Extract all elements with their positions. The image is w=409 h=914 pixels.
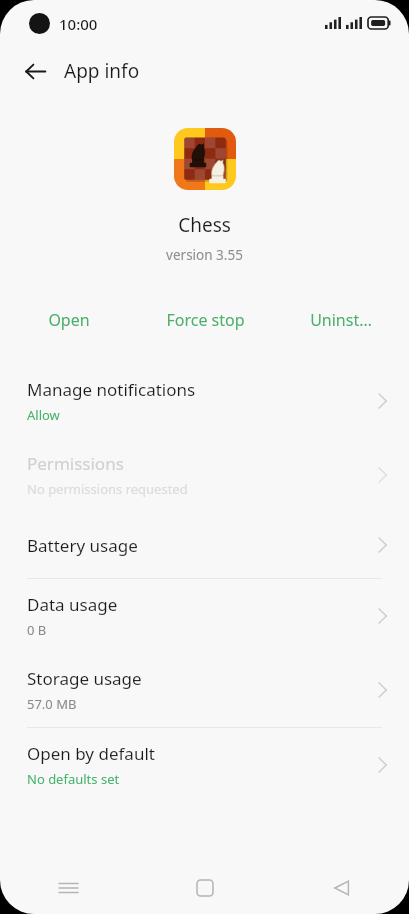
staticText: Permissions [27,452,124,475]
staticText: Manage notifications [27,378,196,401]
staticText: 57.0 MB [27,695,77,713]
staticText: No defaults set [27,770,120,788]
staticText: version 3.55 [166,246,243,264]
staticText: Open by default [27,742,155,765]
staticText: 10:00 [59,14,98,34]
button[interactable]: Battery usage [0,512,409,578]
staticText: Open [48,309,90,331]
staticText: Uninst… [310,309,372,331]
staticText: No permissions requested [27,480,188,498]
button[interactable]: Open by default [0,728,409,802]
button[interactable]: Home [137,862,273,914]
button: Permissions [0,438,409,512]
button[interactable]: Recent apps [0,862,137,914]
button[interactable]: Open [0,298,137,342]
staticText: Battery usage [27,534,138,557]
staticText: App info [64,58,140,84]
button[interactable]: Manage notifications [0,364,409,438]
button[interactable]: Force stop [137,298,273,342]
button[interactable]: Back [273,862,409,914]
staticText: Force stop [166,309,245,331]
button[interactable]: Data usage [0,579,409,653]
button[interactable]: Back [17,53,53,89]
staticText: 0 B [27,621,47,639]
staticText: Chess [178,212,231,238]
staticText: Allow [27,406,60,424]
staticText: Storage usage [27,667,142,690]
staticText: Data usage [27,593,118,616]
button[interactable]: Storage usage [0,653,409,727]
button[interactable]: Uninst… [273,298,409,342]
